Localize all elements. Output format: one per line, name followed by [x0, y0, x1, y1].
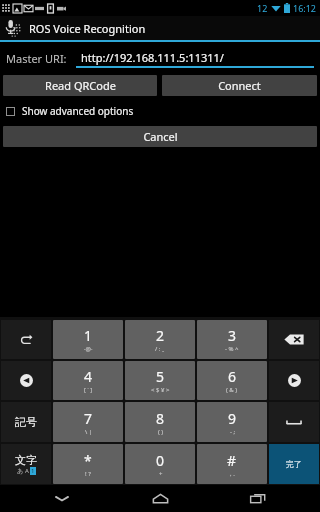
- staticText: 16:12: [293, 2, 317, 14]
- staticText: 7: [84, 409, 93, 428]
- staticText: 文字: [15, 453, 37, 467]
- staticText: 12: [257, 2, 268, 14]
- staticText: 4: [84, 367, 93, 386]
- staticText: ‧@‧: [84, 345, 93, 353]
- button[interactable]: Move right: [269, 361, 319, 400]
- button[interactable]: 9: [197, 402, 267, 442]
- staticText: 1: [31, 467, 35, 475]
- staticText: A: [25, 467, 29, 475]
- button[interactable]: Connect: [162, 75, 317, 96]
- staticText: 0: [156, 451, 165, 470]
- button[interactable]: Show advanced options: [6, 104, 314, 118]
- staticText: http://192.168.111.5:11311/: [81, 50, 224, 65]
- staticText: \ |: [85, 428, 93, 436]
- staticText: Read QRCode: [45, 78, 116, 93]
- button[interactable]: 3: [197, 320, 267, 359]
- staticText: +: [159, 470, 163, 478]
- staticText: ( ): [158, 428, 164, 436]
- staticText: あ: [17, 467, 24, 475]
- staticText: 5: [156, 367, 165, 386]
- button[interactable]: 2: [125, 320, 195, 359]
- staticText: 1: [84, 326, 93, 345]
- button[interactable]: Cancel: [3, 126, 317, 147]
- staticText: - % ^: [225, 345, 239, 353]
- button[interactable]: #: [197, 444, 267, 484]
- staticText: 9: [228, 409, 237, 428]
- staticText: ! ?: [85, 470, 91, 478]
- button[interactable]: Backspace: [269, 320, 319, 359]
- staticText: < $ ¥ >: [151, 386, 170, 394]
- staticText: Show advanced options: [22, 104, 134, 118]
- button[interactable]: 記号: [1, 402, 51, 442]
- button[interactable]: Recents: [222, 485, 294, 512]
- staticText: Connect: [218, 78, 261, 93]
- staticText: , .: [230, 470, 235, 478]
- staticText: / : ˍ: [155, 345, 165, 353]
- button[interactable]: 5: [125, 361, 195, 400]
- button[interactable]: 7: [53, 402, 123, 442]
- button[interactable]: Read QRCode: [3, 75, 157, 96]
- staticText: *: [84, 451, 92, 470]
- button[interactable]: Home: [124, 485, 196, 512]
- button[interactable]: 完了: [269, 444, 319, 484]
- button[interactable]: *: [53, 444, 123, 484]
- staticText: Master URI:: [6, 51, 67, 66]
- staticText: - ;: [230, 428, 236, 436]
- staticText: ROS Voice Recognition: [29, 21, 146, 36]
- button[interactable]: Hide keyboard: [26, 485, 98, 512]
- staticText: 2: [156, 326, 165, 345]
- staticText: Cancel: [143, 129, 178, 144]
- button[interactable]: http://192.168.111.5:11311/: [76, 49, 314, 68]
- button[interactable]: Space: [269, 402, 319, 442]
- button[interactable]: Move left: [1, 361, 51, 400]
- staticText: 6: [228, 367, 237, 386]
- button[interactable]: 6: [197, 361, 267, 400]
- staticText: [ ˙ ]: [84, 386, 93, 394]
- button[interactable]: 1: [53, 320, 123, 359]
- staticText: 記号: [15, 415, 37, 429]
- button[interactable]: 8: [125, 402, 195, 442]
- staticText: 完了: [286, 459, 302, 469]
- button[interactable]: Undo: [1, 320, 51, 359]
- staticText: 3: [228, 326, 237, 345]
- button[interactable]: 4: [53, 361, 123, 400]
- button[interactable]: 文字: [1, 444, 51, 484]
- staticText: #: [227, 451, 237, 470]
- staticText: 8: [156, 409, 165, 428]
- button[interactable]: 0: [125, 444, 195, 484]
- staticText: ( & ): [226, 386, 238, 394]
